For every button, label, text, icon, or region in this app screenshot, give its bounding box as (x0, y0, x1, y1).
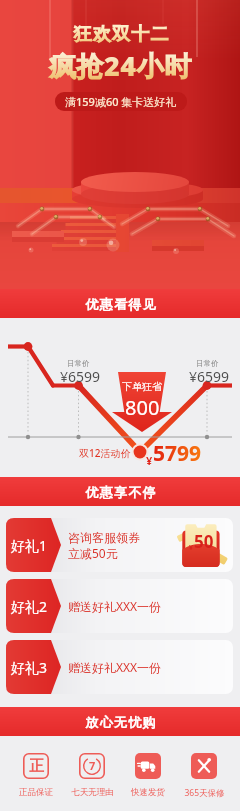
staticText: 7 (89, 758, 96, 773)
staticText: ¥ (189, 543, 194, 553)
button[interactable]: 快速发货 (120, 753, 176, 798)
staticText: 800 (125, 394, 160, 421)
staticText: 放心无忧购 (85, 714, 156, 730)
staticText: 狂欢双十二 (73, 23, 169, 46)
staticText: 日常价 (67, 359, 90, 368)
staticText: 七天无理由 (71, 787, 114, 798)
button[interactable]: 好礼1 (6, 518, 233, 572)
staticText: 立减50元 (68, 545, 118, 561)
staticText: 优惠享不停 (85, 484, 156, 500)
staticText: ¥ (146, 453, 153, 468)
staticText: 好礼2 (11, 597, 48, 616)
staticText: 优惠看得见 (85, 296, 156, 312)
staticText: ¥6599 (60, 367, 101, 386)
staticText: 正品保证 (19, 787, 53, 798)
staticText: 疯抢24小时 (49, 47, 192, 84)
button[interactable]: 365天保修 (176, 753, 232, 799)
staticText: 5799 (153, 439, 202, 468)
staticText: 365天保修 (184, 787, 225, 799)
staticText: 好礼1 (11, 536, 48, 555)
staticText: 双12活动价 (79, 446, 131, 460)
staticText: 满159减60 集卡送好礼 (65, 94, 177, 109)
button[interactable]: 好礼2 (6, 579, 233, 633)
staticText: 50 (194, 530, 214, 553)
staticText: 正 (29, 757, 44, 776)
staticText: 咨询客服领券 (68, 530, 140, 545)
button[interactable]: 正品保证 (8, 753, 64, 798)
staticText: 赠送好礼XXX一份 (68, 598, 162, 614)
staticText: 日常价 (196, 359, 219, 368)
staticText: 下单狂省 (122, 380, 162, 393)
button[interactable]: 好礼3 (6, 640, 233, 694)
staticText: 快速发货 (131, 787, 165, 798)
staticText: 赠送好礼XXX一份 (68, 659, 162, 675)
button[interactable]: 七天无理由 (64, 753, 120, 798)
staticText: 好礼3 (11, 658, 48, 677)
staticText: ¥6599 (189, 367, 230, 386)
